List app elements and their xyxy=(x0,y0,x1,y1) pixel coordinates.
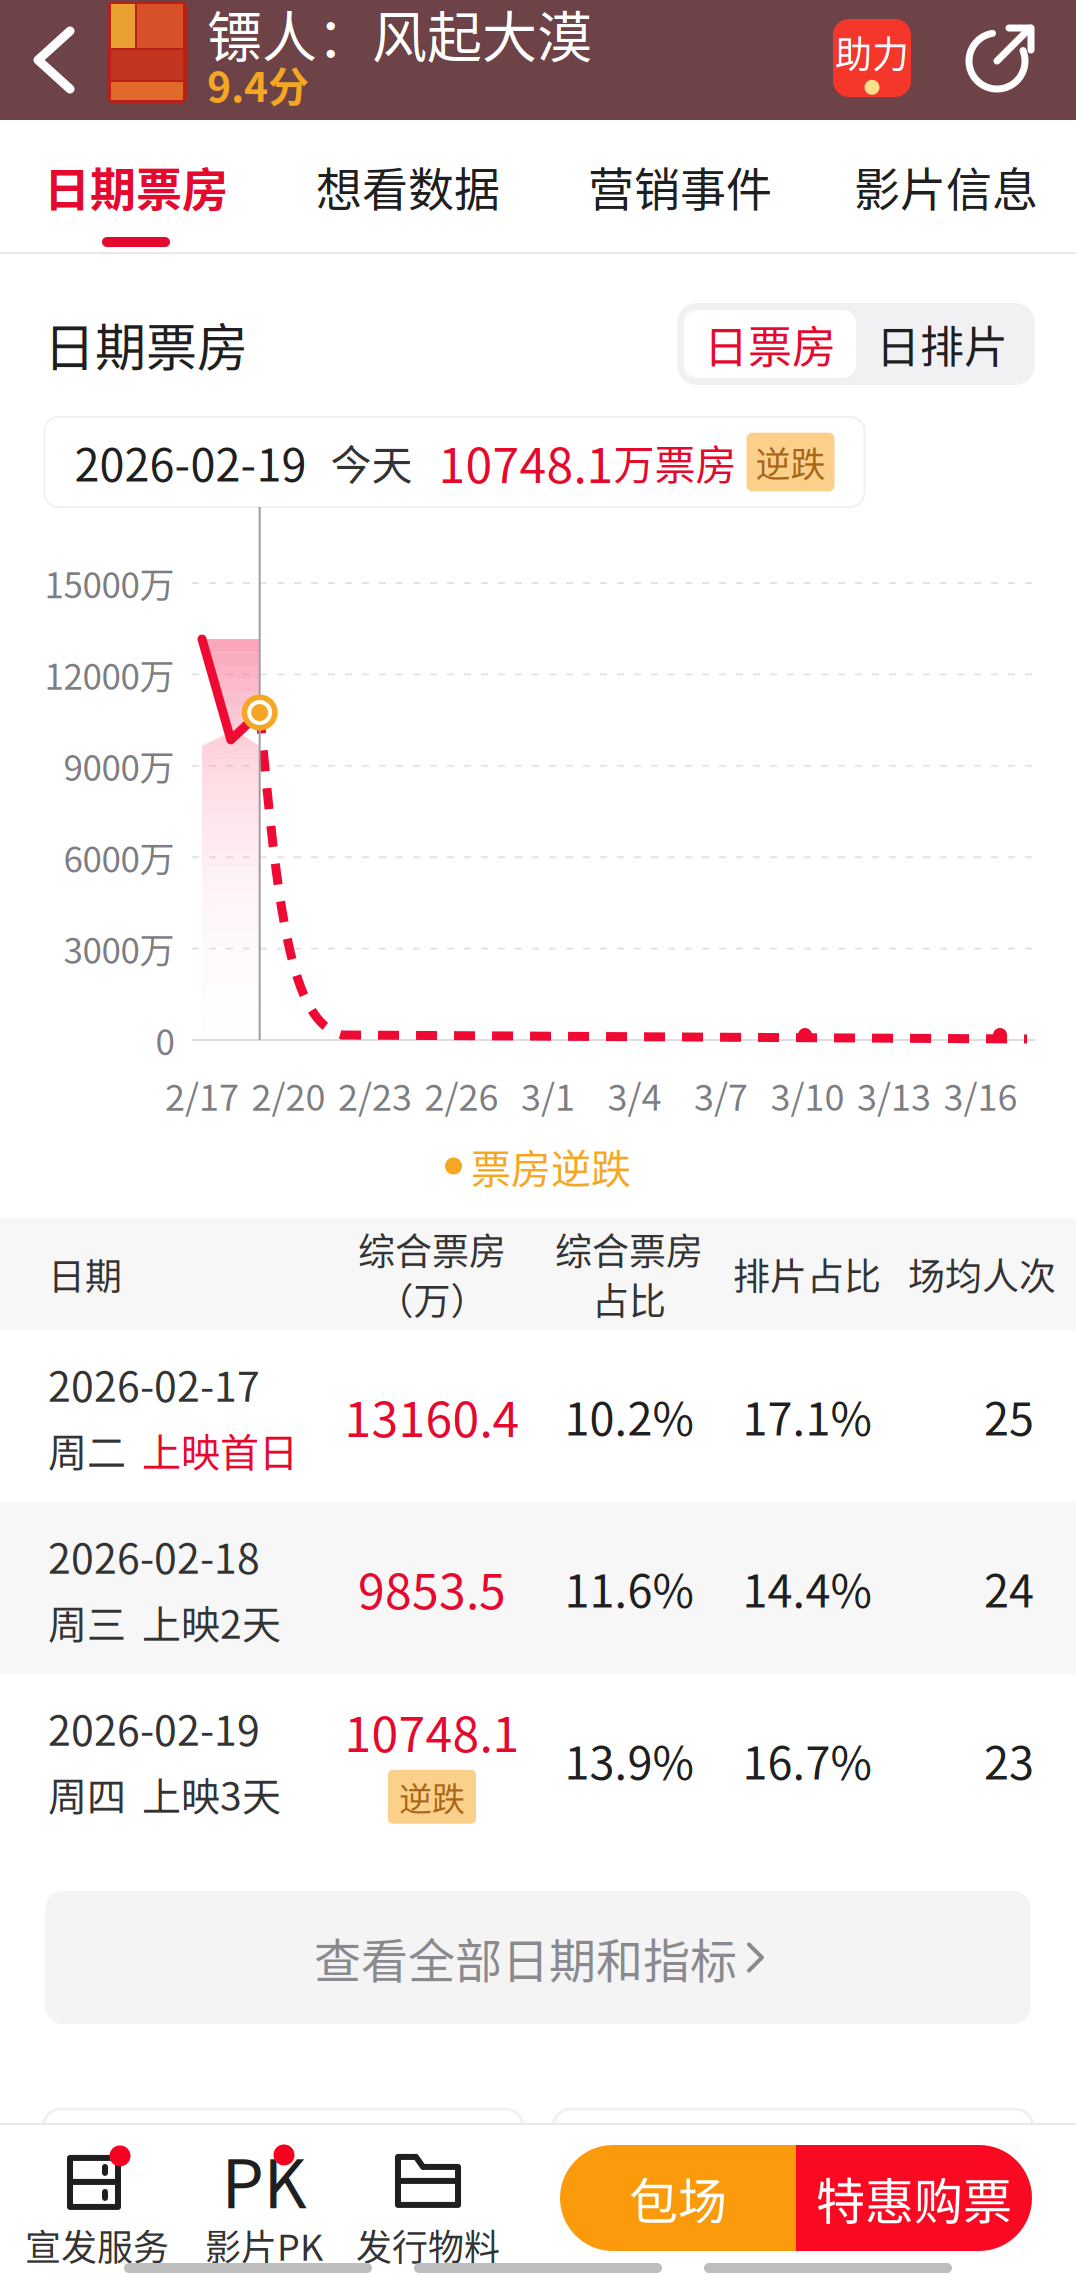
staticText: 场均人次 xyxy=(908,1247,1056,1301)
staticText: 2026-02-19 xyxy=(48,1698,260,1757)
staticText: 镖人：风起大漠 xyxy=(207,0,592,73)
staticText: （万） xyxy=(376,1272,487,1326)
button[interactable]: 助力 xyxy=(817,0,927,118)
button[interactable]: 分享 xyxy=(945,0,1055,118)
staticText: 特惠购票 xyxy=(816,2162,1012,2233)
button[interactable]: 包场 xyxy=(560,2145,796,2251)
staticText: 13160.4 xyxy=(344,1381,519,1451)
staticText: 综合票房 xyxy=(555,1222,703,1276)
staticText: 16.7% xyxy=(742,1727,871,1793)
staticText: 万票房 xyxy=(613,432,736,492)
staticText: 3/16 xyxy=(943,1069,1017,1121)
staticText: 12000万 xyxy=(44,649,174,700)
staticText: 营销事件 xyxy=(588,153,772,219)
button[interactable]: 营销事件 xyxy=(544,120,816,252)
staticText: 15000万 xyxy=(44,558,174,608)
staticText: 2/17 xyxy=(165,1069,239,1121)
staticText: 日期票房 xyxy=(44,153,228,219)
button[interactable]: 宣发服务 xyxy=(12,2150,182,2270)
staticText: 影片PK xyxy=(205,2219,323,2271)
staticText: 周二 xyxy=(48,1421,126,1478)
staticText: 上映3天 xyxy=(142,1765,281,1822)
staticText: 排片占比 xyxy=(733,1247,881,1301)
staticText: 10.2% xyxy=(564,1383,693,1449)
staticText: 综合票房 xyxy=(358,1222,506,1276)
staticText: 查看全部日期和指标 xyxy=(314,1923,737,1992)
staticText: 9000万 xyxy=(63,740,174,791)
staticText: 2026-02-17 xyxy=(48,1354,260,1413)
button[interactable]: 想看数据 xyxy=(272,120,544,252)
button[interactable]: 特惠购票 xyxy=(796,2145,1032,2251)
staticText: 2/26 xyxy=(424,1069,498,1121)
staticText: 助力 xyxy=(835,25,909,79)
staticText: 影片信息 xyxy=(854,153,1038,219)
button[interactable]: 查看全部日期和指标 xyxy=(45,1891,1031,2024)
staticText: 2026-02-18 xyxy=(48,1526,260,1585)
staticText: 2/20 xyxy=(251,1069,325,1121)
staticText: 想看数据 xyxy=(316,153,500,219)
staticText: 10748.1 xyxy=(344,1696,519,1766)
staticText: 3/1 xyxy=(521,1069,575,1121)
staticText: 0 xyxy=(155,1015,174,1065)
staticText: 9.4分 xyxy=(207,54,309,114)
staticText: 3/13 xyxy=(857,1069,931,1121)
staticText: 日排片 xyxy=(876,312,1008,376)
staticText: 周四 xyxy=(48,1765,126,1822)
button[interactable]: 影片信息 xyxy=(816,120,1076,252)
staticText: 2026-02-19 xyxy=(74,429,306,495)
button[interactable]: PK xyxy=(179,2150,349,2270)
staticText: 10748.1 xyxy=(438,427,613,497)
staticText: 包场 xyxy=(629,2162,727,2233)
staticText: 6000万 xyxy=(63,832,174,883)
staticText: 日期 xyxy=(48,1247,122,1301)
staticText: 上映首日 xyxy=(142,1421,298,1478)
staticText: 日票房 xyxy=(704,312,836,376)
staticText: 11.6% xyxy=(564,1555,693,1621)
button[interactable]: 返回 xyxy=(0,0,108,120)
staticText: 票房逆跌 xyxy=(471,1137,631,1195)
staticText: PK xyxy=(221,2130,306,2227)
button[interactable]: 日票房 xyxy=(684,310,856,378)
staticText: 9853.5 xyxy=(358,1553,506,1623)
staticText: 3000万 xyxy=(63,923,174,974)
staticText: 周三 xyxy=(48,1593,126,1650)
staticText: 逆跌 xyxy=(399,1773,465,1821)
button[interactable]: 日排片 xyxy=(856,310,1028,378)
staticText: 24 xyxy=(984,1555,1034,1621)
staticText: 发行物料 xyxy=(356,2219,500,2271)
staticText: 3/4 xyxy=(607,1069,661,1121)
staticText: 上映2天 xyxy=(142,1593,281,1650)
staticText: 日期票房 xyxy=(44,307,248,381)
staticText: 3/7 xyxy=(694,1069,748,1121)
staticText: 3/10 xyxy=(770,1069,844,1121)
button[interactable]: 日期票房 xyxy=(0,120,272,252)
staticText: 25 xyxy=(984,1383,1034,1449)
staticText: 13.9% xyxy=(564,1727,693,1793)
staticText: 23 xyxy=(984,1727,1034,1793)
button[interactable]: 发行物料 xyxy=(343,2150,513,2270)
staticText: 14.4% xyxy=(742,1555,871,1621)
staticText: 今天 xyxy=(330,432,412,492)
staticText: 宣发服务 xyxy=(25,2219,169,2271)
staticText: 逆跌 xyxy=(755,437,825,487)
staticText: 2/23 xyxy=(338,1069,412,1121)
staticText: 占比 xyxy=(592,1272,666,1326)
staticText: 17.1% xyxy=(742,1383,871,1449)
